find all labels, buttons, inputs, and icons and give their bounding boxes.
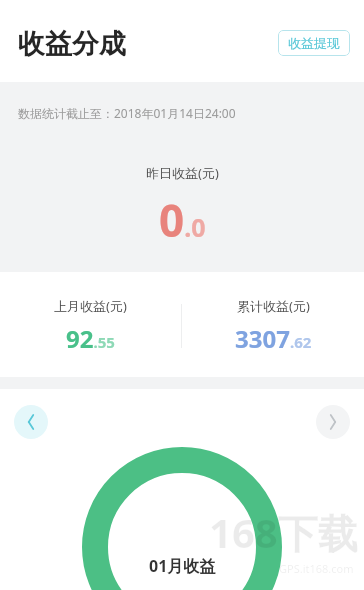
button[interactable]: Previous month	[14, 405, 48, 439]
staticText: 上月收益(元)	[54, 297, 127, 315]
button[interactable]: 收益提现	[278, 30, 350, 56]
button[interactable]: 上月收益(元)	[0, 274, 181, 377]
staticText: 数据统计截止至：2018年01月14日24:00	[18, 105, 236, 121]
staticText: 0.0	[159, 190, 206, 250]
staticText: 累计收益(元)	[237, 297, 310, 315]
staticText: 昨日收益(元)	[146, 164, 219, 182]
button[interactable]: 累计收益(元)	[182, 274, 364, 377]
staticText: 3307.62	[235, 322, 312, 355]
button[interactable]: Next month	[316, 405, 350, 439]
staticText: 168下载	[209, 505, 358, 560]
staticText: 01月收益	[149, 555, 216, 577]
staticText: 收益分成	[18, 27, 126, 61]
staticText: 收益提现	[288, 35, 340, 51]
staticText: GPS.it168.com	[279, 561, 354, 576]
staticText: 92.55	[66, 322, 115, 355]
